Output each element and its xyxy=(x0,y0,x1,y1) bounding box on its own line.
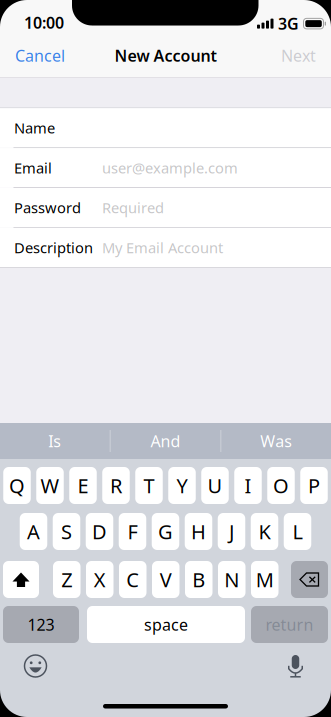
staticText: O xyxy=(273,472,289,499)
staticText: Was xyxy=(260,430,292,452)
button[interactable]: space xyxy=(87,606,245,643)
button[interactable]: V xyxy=(152,561,179,598)
button[interactable]: Is xyxy=(0,423,110,459)
staticText: A xyxy=(27,518,40,545)
button[interactable]: Email xyxy=(0,148,331,187)
staticText: B xyxy=(192,566,205,593)
staticText: New Account xyxy=(114,45,216,66)
button[interactable]: N xyxy=(218,561,245,598)
staticText: R xyxy=(110,472,122,499)
button[interactable]: E xyxy=(69,467,97,504)
button[interactable]: S xyxy=(53,513,80,550)
button[interactable]: T xyxy=(135,467,163,504)
staticText: H xyxy=(191,518,206,545)
button[interactable]: I xyxy=(234,467,262,504)
button[interactable]: Name xyxy=(0,108,331,147)
staticText: Is xyxy=(48,430,61,452)
button[interactable]: Y xyxy=(168,467,196,504)
staticText: Y xyxy=(176,472,187,499)
staticText: N xyxy=(224,566,239,593)
staticText: space xyxy=(144,614,188,635)
button[interactable]: X xyxy=(86,561,113,598)
button[interactable]: U xyxy=(201,467,229,504)
staticText: And xyxy=(150,430,180,452)
button[interactable]: G xyxy=(152,513,179,550)
button[interactable]: Password xyxy=(0,188,331,227)
staticText: P xyxy=(308,472,320,499)
staticText: U xyxy=(207,472,222,499)
staticText: Q xyxy=(9,472,25,499)
staticText: L xyxy=(292,518,302,545)
staticText: E xyxy=(77,472,88,499)
staticText: Name xyxy=(14,118,55,138)
button[interactable]: Emoji keyboard xyxy=(16,647,54,685)
button[interactable]: K xyxy=(251,513,278,550)
button[interactable]: Description xyxy=(0,228,331,267)
staticText: M xyxy=(256,566,274,593)
button[interactable]: L xyxy=(284,513,311,550)
button[interactable]: Z xyxy=(53,561,80,598)
staticText: Email xyxy=(14,158,52,177)
button[interactable]: A xyxy=(20,513,47,550)
staticText: I xyxy=(244,472,251,499)
staticText: C xyxy=(126,566,139,593)
staticText: J xyxy=(229,518,234,545)
staticText: Next xyxy=(281,45,316,66)
button[interactable]: P xyxy=(300,467,328,504)
staticText: K xyxy=(258,518,270,545)
button[interactable]: return xyxy=(251,606,328,643)
button[interactable]: Shift xyxy=(3,561,39,598)
button[interactable]: O xyxy=(267,467,295,504)
button[interactable]: Q xyxy=(3,467,31,504)
staticText: Description xyxy=(14,238,93,257)
staticText: D xyxy=(92,518,107,545)
staticText: 3G xyxy=(278,13,299,34)
button[interactable]: H xyxy=(185,513,212,550)
staticText: user@example.com xyxy=(102,158,238,177)
button[interactable]: Dictation xyxy=(276,647,314,685)
button[interactable]: Next xyxy=(266,34,331,77)
staticText: Z xyxy=(61,566,72,593)
staticText: T xyxy=(143,472,154,499)
staticText: 123 xyxy=(27,614,54,635)
button[interactable]: D xyxy=(86,513,113,550)
button[interactable]: J xyxy=(218,513,245,550)
button[interactable]: R xyxy=(102,467,130,504)
staticText: Password xyxy=(14,198,81,217)
staticText: return xyxy=(265,614,313,635)
staticText: W xyxy=(40,472,59,499)
staticText: 10:00 xyxy=(24,12,64,33)
button[interactable]: B xyxy=(185,561,212,598)
staticText: Cancel xyxy=(15,45,65,66)
button[interactable]: And xyxy=(111,423,220,459)
staticText: My Email Account xyxy=(102,238,223,257)
button[interactable]: Was xyxy=(221,423,331,459)
staticText: Required xyxy=(102,198,164,217)
button[interactable]: Cancel xyxy=(0,34,80,77)
button[interactable]: W xyxy=(36,467,64,504)
button[interactable]: M xyxy=(251,561,278,598)
staticText: F xyxy=(127,518,137,545)
button[interactable]: F xyxy=(119,513,146,550)
button[interactable]: C xyxy=(119,561,146,598)
button[interactable]: 123 xyxy=(3,606,79,643)
staticText: S xyxy=(61,518,72,545)
staticText: V xyxy=(160,566,172,593)
staticText: X xyxy=(94,566,106,593)
button[interactable]: Delete xyxy=(291,561,328,598)
staticText: G xyxy=(158,518,173,545)
